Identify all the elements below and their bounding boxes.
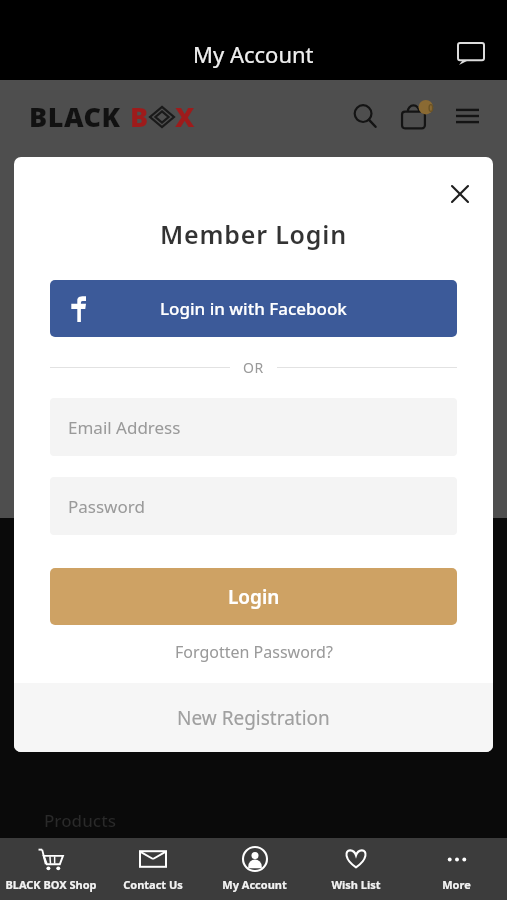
staticText: New Registration <box>177 705 330 731</box>
button[interactable]: Close <box>441 175 479 213</box>
staticText: Password <box>68 495 145 518</box>
staticText: Login <box>228 584 280 610</box>
staticText: Login in with Facebook <box>160 297 347 320</box>
staticText: 0 <box>428 101 434 115</box>
button[interactable]: My Account <box>204 838 305 900</box>
staticText: Forgotten Password? <box>175 641 333 663</box>
staticText: X <box>175 98 195 135</box>
staticText: Wish List <box>331 877 381 892</box>
button[interactable]: Wish List <box>305 838 406 900</box>
staticText: OR <box>243 358 264 377</box>
staticText: B <box>130 98 149 135</box>
button[interactable]: Email Address <box>50 398 457 456</box>
button[interactable]: Messages <box>453 36 489 72</box>
staticText: Email Address <box>68 416 181 439</box>
button[interactable]: Contact Us <box>102 838 204 900</box>
staticText: My Account <box>193 39 314 69</box>
button[interactable]: Login in with Facebook <box>50 280 457 337</box>
button[interactable]: Menu <box>447 96 487 136</box>
button[interactable]: BLACK BOX Shop <box>0 838 102 900</box>
button[interactable]: Login <box>50 568 457 625</box>
staticText: Contact Us <box>123 877 183 892</box>
button[interactable]: Search <box>345 96 385 136</box>
staticText: More <box>442 877 471 892</box>
button[interactable]: Forgotten Password? <box>14 641 493 663</box>
staticText: Products <box>44 809 116 832</box>
staticText: Member Login <box>14 217 493 251</box>
button[interactable]: New Registration <box>14 683 493 752</box>
button[interactable]: Password <box>50 477 457 535</box>
staticText: My Account <box>222 877 287 892</box>
button[interactable]: Shopping bag <box>395 94 439 138</box>
staticText: BLACK BOX Shop <box>5 877 97 892</box>
staticText: BLACK <box>29 98 121 135</box>
button[interactable]: More <box>406 838 507 900</box>
